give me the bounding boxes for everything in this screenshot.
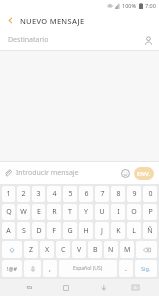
button[interactable]: G — [63, 222, 77, 239]
button[interactable]: Emoji — [117, 162, 134, 184]
staticText: Y — [84, 207, 88, 217]
button[interactable]: 2 — [17, 186, 30, 202]
button[interactable]: Home — [56, 279, 76, 296]
button[interactable]: , — [43, 260, 57, 277]
button[interactable]: X — [40, 241, 54, 258]
button[interactable]: 5 — [63, 186, 77, 202]
button[interactable]: A — [2, 222, 15, 239]
button[interactable]: I — [111, 204, 125, 220]
staticText: F — [52, 226, 56, 236]
button[interactable]: 4 — [47, 186, 61, 202]
button[interactable]: C — [56, 241, 70, 258]
staticText: Sig. — [141, 265, 151, 272]
staticText: X — [45, 245, 50, 255]
button[interactable]: 9 — [127, 186, 141, 202]
button[interactable]: W — [17, 204, 30, 220]
staticText: 9 — [132, 189, 137, 199]
button[interactable] — [136, 241, 157, 258]
staticText: R — [52, 207, 57, 217]
button[interactable]: Z — [24, 241, 38, 258]
staticText: D — [36, 226, 42, 236]
button[interactable]: Q — [2, 204, 15, 220]
button[interactable]: Ñ — [143, 222, 157, 239]
staticText: 2 — [21, 189, 26, 199]
staticText: A — [6, 226, 11, 236]
button[interactable]: 7 — [95, 186, 109, 202]
staticText: Introducir mensaje — [16, 168, 117, 178]
staticText: NUEVO MENSAJE — [20, 16, 85, 26]
staticText: P — [148, 207, 153, 217]
staticText: B — [93, 245, 98, 255]
staticText: E — [37, 207, 41, 217]
button[interactable]: Destinatario — [0, 30, 159, 50]
button[interactable]: 0 — [143, 186, 157, 202]
staticText: 100% — [122, 2, 137, 9]
button[interactable]: H — [79, 222, 93, 239]
staticText: L — [132, 226, 136, 236]
button[interactable]: J — [95, 222, 109, 239]
staticText: N — [108, 245, 114, 255]
staticText: W — [20, 207, 27, 217]
button[interactable]: Español (US) — [59, 260, 117, 277]
button[interactable]: Recent apps — [19, 279, 39, 296]
button[interactable]: . — [119, 260, 133, 277]
staticText: G — [67, 226, 73, 236]
staticText: V — [77, 245, 82, 255]
staticText: Q — [6, 207, 12, 217]
button[interactable]: 3 — [32, 186, 45, 202]
button[interactable]: !@# — [2, 260, 22, 277]
button[interactable]: M — [120, 241, 134, 258]
button[interactable]: Back — [0, 11, 20, 30]
staticText: Español (US) — [73, 265, 103, 272]
staticText: . — [125, 264, 127, 274]
staticText: 6 — [84, 189, 89, 199]
button[interactable]: 8 — [111, 186, 125, 202]
button[interactable]: R — [47, 204, 61, 220]
staticText: S — [22, 226, 26, 236]
staticText: M — [124, 245, 131, 255]
button[interactable]: 6 — [79, 186, 93, 202]
staticText: O — [131, 207, 137, 217]
button[interactable]: Hide keyboard — [125, 279, 145, 296]
staticText: 0 — [148, 189, 153, 199]
staticText: 7:00 — [145, 2, 156, 9]
button[interactable]: F — [47, 222, 61, 239]
button[interactable]: T — [63, 204, 77, 220]
button[interactable]: Y — [79, 204, 93, 220]
staticText: J — [101, 226, 103, 236]
button[interactable]: N — [104, 241, 118, 258]
button[interactable]: S — [17, 222, 30, 239]
button[interactable]: Back — [93, 279, 113, 296]
button[interactable]: Add contact — [137, 30, 159, 50]
button[interactable]: Attach — [0, 162, 16, 184]
button[interactable]: V — [72, 241, 86, 258]
button[interactable]: L — [127, 222, 141, 239]
staticText: Ñ — [147, 226, 153, 236]
staticText: !@# — [7, 265, 17, 272]
button[interactable]: P — [143, 204, 157, 220]
staticText: H — [83, 226, 89, 236]
staticText: 7 — [100, 189, 105, 199]
staticText: U — [99, 207, 105, 217]
button[interactable]: ENV. — [134, 167, 154, 180]
staticText: I — [117, 207, 120, 217]
button[interactable]: O — [127, 204, 141, 220]
staticText: Z — [29, 245, 34, 255]
button[interactable]: K — [111, 222, 125, 239]
staticText: 3 — [36, 189, 41, 199]
staticText: 1 — [6, 189, 11, 199]
staticText: C — [61, 245, 66, 255]
staticText: T — [68, 207, 72, 217]
button[interactable] — [24, 260, 41, 277]
staticText: , — [49, 264, 51, 274]
button[interactable]: 1 — [2, 186, 15, 202]
staticText: ENV. — [137, 170, 151, 178]
button[interactable]: D — [32, 222, 45, 239]
button[interactable]: Sig. — [135, 260, 157, 277]
button[interactable]: U — [95, 204, 109, 220]
staticText: 8 — [116, 189, 121, 199]
button[interactable]: B — [88, 241, 102, 258]
staticText: K — [116, 226, 121, 236]
button[interactable] — [2, 241, 22, 258]
button[interactable]: E — [32, 204, 45, 220]
